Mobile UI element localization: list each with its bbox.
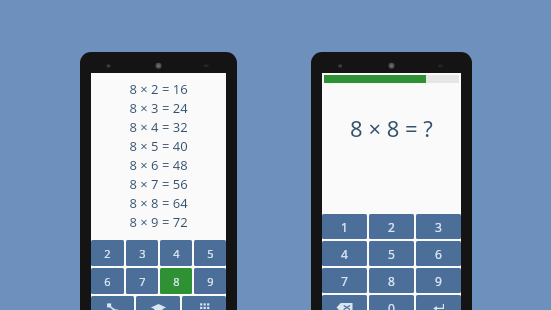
button[interactable]: Backspace [322, 295, 367, 310]
staticText: 8 × 4 = 32 [129, 118, 188, 136]
button[interactable]: 5 [369, 241, 414, 266]
button[interactable]: 5 [194, 240, 226, 266]
button[interactable]: 8 × 4 = 32 [91, 117, 226, 136]
staticText: 2 [104, 246, 111, 261]
button[interactable]: 2 [91, 240, 124, 266]
staticText: 8 × 8 = ? [350, 113, 433, 143]
button[interactable]: Enter [416, 295, 461, 310]
staticText: 0 [388, 300, 395, 310]
button[interactable]: 9 [194, 268, 226, 294]
button[interactable]: 9 [416, 268, 461, 293]
button[interactable]: 8 × 9 = 72 [91, 212, 226, 231]
staticText: 2 [388, 219, 395, 235]
button[interactable]: Shuffle [91, 296, 134, 310]
button[interactable]: 0 [369, 295, 414, 310]
button[interactable]: Learn mode [136, 296, 180, 310]
button[interactable]: 4 [160, 240, 192, 266]
staticText: 3 [435, 219, 442, 235]
button[interactable]: 3 [416, 214, 461, 239]
button[interactable]: 6 [91, 268, 124, 294]
staticText: 9 [435, 273, 442, 289]
button[interactable]: 8 × 6 = 48 [91, 155, 226, 174]
button[interactable]: 3 [126, 240, 158, 266]
staticText: 8 [173, 274, 180, 289]
button[interactable]: 8 × 3 = 24 [91, 98, 226, 117]
staticText: 1 [341, 219, 348, 235]
button[interactable]: 7 [322, 268, 367, 293]
staticText: 8 [388, 273, 395, 289]
staticText: 8 × 6 = 48 [129, 156, 188, 174]
button[interactable]: 8 [369, 268, 414, 293]
staticText: 6 [435, 246, 442, 262]
button[interactable]: 4 [322, 241, 367, 266]
staticText: 8 × 3 = 24 [129, 99, 188, 117]
button[interactable]: 8 [160, 268, 192, 294]
staticText: 4 [341, 246, 348, 262]
staticText: 8 × 7 = 56 [129, 175, 188, 193]
button[interactable]: 8 × 2 = 16 [91, 79, 226, 98]
button[interactable]: 7 [126, 268, 158, 294]
staticText: 4 [173, 246, 180, 261]
button[interactable]: 2 [369, 214, 414, 239]
staticText: 8 × 2 = 16 [129, 80, 188, 98]
staticText: 5 [207, 246, 214, 261]
button[interactable]: Keypad [182, 296, 226, 310]
staticText: 6 [104, 274, 111, 289]
staticText: 3 [139, 246, 146, 261]
staticText: 8 × 5 = 40 [129, 137, 188, 155]
staticText: 8 × 8 = 64 [129, 194, 188, 212]
staticText: 9 [207, 274, 214, 289]
button[interactable]: 8 × 7 = 56 [91, 174, 226, 193]
button[interactable]: 6 [416, 241, 461, 266]
button[interactable]: 8 × 5 = 40 [91, 136, 226, 155]
staticText: 7 [341, 273, 348, 289]
button[interactable]: 8 × 8 = 64 [91, 193, 226, 212]
button[interactable]: 1 [322, 214, 367, 239]
staticText: 8 × 9 = 72 [129, 213, 188, 231]
staticText: 5 [388, 246, 395, 262]
staticText: 7 [139, 274, 146, 289]
